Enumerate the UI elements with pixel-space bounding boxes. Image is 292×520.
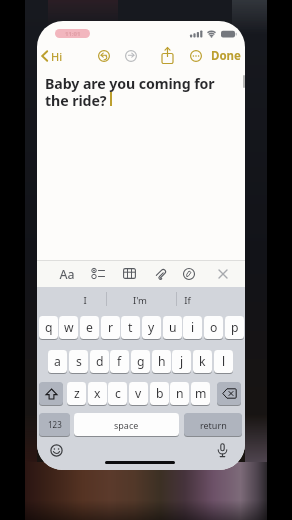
- button[interactable]: [161, 47, 174, 64]
- button[interactable]: [155, 267, 168, 280]
- staticText: d: [96, 353, 104, 370]
- button[interactable]: [217, 382, 241, 405]
- button[interactable]: o: [204, 316, 223, 339]
- button[interactable]: v: [129, 382, 148, 405]
- button[interactable]: d: [90, 350, 109, 373]
- button[interactable]: m: [191, 382, 210, 405]
- staticText: k: [199, 353, 206, 370]
- button[interactable]: [183, 268, 195, 280]
- staticText: z: [74, 385, 80, 402]
- button[interactable]: a: [48, 350, 67, 373]
- staticText: a: [54, 353, 61, 370]
- button[interactable]: 123: [39, 413, 70, 436]
- button[interactable]: [91, 267, 105, 280]
- staticText: l: [222, 353, 226, 370]
- button[interactable]: [125, 50, 137, 62]
- staticText: 11:01: [65, 30, 81, 38]
- button[interactable]: x: [88, 382, 107, 405]
- button[interactable]: [190, 50, 202, 62]
- button[interactable]: i: [183, 316, 202, 339]
- button[interactable]: h: [152, 350, 171, 373]
- staticText: Hi: [51, 49, 63, 64]
- button[interactable]: space: [74, 413, 179, 436]
- staticText: c: [115, 385, 121, 402]
- button[interactable]: y: [142, 316, 161, 339]
- staticText: return: [200, 419, 227, 431]
- staticText: n: [176, 385, 184, 402]
- staticText: x: [94, 385, 101, 402]
- button[interactable]: l: [214, 350, 233, 373]
- button[interactable]: [123, 268, 136, 279]
- staticText: r: [108, 319, 114, 336]
- staticText: b: [156, 385, 164, 402]
- button[interactable]: p: [225, 316, 244, 339]
- button[interactable]: g: [131, 350, 150, 373]
- button[interactable]: u: [163, 316, 182, 339]
- button[interactable]: e: [80, 316, 99, 339]
- button[interactable]: [39, 382, 63, 405]
- button[interactable]: r: [101, 316, 120, 339]
- staticText: Baby are you coming for the ride?: [45, 74, 215, 110]
- button[interactable]: [218, 269, 228, 279]
- button[interactable]: s: [69, 350, 88, 373]
- staticText: Aa: [59, 266, 75, 283]
- staticText: o: [210, 319, 218, 336]
- button[interactable]: q: [39, 316, 58, 339]
- staticText: j: [180, 353, 184, 370]
- staticText: v: [135, 385, 142, 402]
- staticText: p: [231, 319, 239, 336]
- staticText: w: [64, 319, 74, 336]
- button[interactable]: [37, 287, 106, 311]
- staticText: space: [114, 419, 139, 431]
- button[interactable]: return: [184, 413, 242, 436]
- button[interactable]: [106, 287, 175, 311]
- staticText: q: [45, 319, 53, 336]
- button[interactable]: z: [67, 382, 86, 405]
- staticText: h: [158, 353, 166, 370]
- button[interactable]: j: [172, 350, 191, 373]
- staticText: I: [83, 294, 87, 307]
- staticText: g: [137, 353, 145, 370]
- button[interactable]: [50, 444, 63, 457]
- staticText: e: [86, 319, 93, 336]
- button[interactable]: k: [193, 350, 212, 373]
- staticText: I'm: [133, 294, 147, 307]
- button[interactable]: f: [110, 350, 129, 373]
- button[interactable]: [98, 50, 110, 62]
- staticText: If: [184, 294, 191, 307]
- staticText: y: [148, 319, 155, 336]
- button[interactable]: [217, 443, 228, 458]
- staticText: i: [191, 319, 195, 336]
- staticText: m: [195, 385, 207, 402]
- button[interactable]: w: [59, 316, 78, 339]
- button[interactable]: [55, 264, 79, 284]
- staticText: s: [76, 353, 82, 370]
- button[interactable]: [176, 287, 245, 311]
- button[interactable]: n: [170, 382, 189, 405]
- button[interactable]: Done: [209, 45, 243, 67]
- staticText: t: [128, 319, 133, 336]
- staticText: u: [169, 319, 177, 336]
- staticText: Done: [211, 48, 241, 64]
- staticText: f: [117, 353, 122, 370]
- button[interactable]: c: [108, 382, 127, 405]
- staticText: 123: [48, 419, 62, 430]
- button[interactable]: b: [150, 382, 169, 405]
- button[interactable]: t: [121, 316, 140, 339]
- button[interactable]: [37, 45, 77, 67]
